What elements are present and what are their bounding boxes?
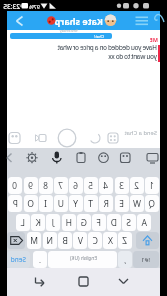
button[interactable]	[48, 251, 117, 268]
button[interactable]	[57, 128, 77, 148]
staticText: L	[20, 217, 25, 229]
button[interactable]	[7, 232, 25, 249]
button[interactable]	[4, 151, 14, 164]
button[interactable]	[50, 151, 63, 164]
staticText: P	[12, 198, 18, 210]
button[interactable]	[34, 131, 48, 145]
button[interactable]: 0	[8, 177, 22, 194]
button[interactable]	[152, 12, 166, 29]
button[interactable]	[34, 275, 48, 289]
button[interactable]: 4	[99, 177, 113, 194]
staticText: 2	[134, 180, 139, 192]
button[interactable]	[77, 275, 91, 289]
button[interactable]	[133, 12, 151, 29]
staticText: 0	[12, 180, 17, 192]
button[interactable]	[146, 151, 159, 164]
button[interactable]: X	[103, 232, 117, 249]
button[interactable]: 1	[145, 177, 159, 194]
button[interactable]	[74, 151, 87, 164]
staticText: N	[46, 235, 53, 247]
button[interactable]	[26, 151, 39, 164]
button[interactable]: L	[16, 214, 30, 231]
button[interactable]: 3	[115, 177, 129, 194]
button[interactable]: B	[58, 232, 72, 249]
button[interactable]: J	[46, 214, 60, 231]
button[interactable]: G	[77, 214, 91, 231]
staticText: F	[96, 217, 101, 229]
staticText: S	[126, 217, 131, 229]
button[interactable]: !#1	[133, 251, 159, 268]
staticText: 97%	[29, 3, 40, 10]
button[interactable]: F	[92, 214, 106, 231]
button[interactable]: Q	[145, 195, 159, 212]
staticText: J	[51, 217, 54, 229]
staticText: you want to do xx	[108, 52, 157, 61]
button[interactable]: D	[107, 214, 121, 231]
button[interactable]	[136, 232, 159, 249]
button[interactable]: M	[27, 232, 41, 249]
button[interactable]	[7, 11, 160, 30]
staticText: !#1	[141, 256, 150, 264]
staticText: M	[30, 235, 38, 247]
staticText: Q	[148, 198, 155, 210]
staticText: 3	[119, 180, 124, 192]
staticText: T	[88, 198, 93, 210]
button[interactable]: A	[137, 214, 151, 231]
button[interactable]: V	[73, 232, 87, 249]
staticText: ME	[149, 36, 158, 43]
staticText: Send	[10, 255, 26, 264]
button[interactable]: 5	[84, 177, 98, 194]
staticText: X	[107, 235, 113, 247]
button[interactable]: 6	[69, 177, 83, 194]
button[interactable]: .	[33, 251, 47, 268]
button[interactable]: T	[84, 195, 98, 212]
button[interactable]	[106, 131, 120, 145]
button[interactable]: O	[24, 195, 38, 212]
button[interactable]	[117, 275, 131, 289]
staticText: 5	[88, 180, 93, 192]
button[interactable]: Z	[118, 232, 132, 249]
button[interactable]: E	[115, 195, 129, 212]
button[interactable]: H	[62, 214, 76, 231]
button[interactable]: K	[31, 214, 45, 231]
staticText: Send a Chat	[124, 129, 157, 137]
button[interactable]: 8	[39, 177, 53, 194]
button[interactable]: N	[43, 232, 57, 249]
staticText: Yesterday	[59, 28, 78, 33]
staticText: 6	[73, 180, 78, 192]
button[interactable]: W	[130, 195, 144, 212]
button[interactable]: Send	[7, 251, 30, 268]
button[interactable]: C	[88, 232, 102, 249]
button[interactable]	[97, 151, 110, 164]
button[interactable]	[8, 131, 22, 145]
button[interactable]: P	[8, 195, 22, 212]
button[interactable]: I	[39, 195, 53, 212]
button[interactable]: 9	[24, 177, 38, 194]
staticText: O	[27, 198, 34, 210]
staticText: 9	[28, 180, 33, 192]
staticText: B	[62, 235, 68, 247]
button[interactable]: Y	[69, 195, 83, 212]
staticText: English (UK)	[70, 255, 97, 262]
staticText: G	[80, 217, 87, 229]
button[interactable]: ,	[118, 251, 132, 268]
staticText: E	[119, 198, 124, 210]
button[interactable]: U	[54, 195, 68, 212]
button[interactable]	[7, 127, 160, 148]
staticText: W	[133, 198, 141, 210]
button[interactable]: S	[122, 214, 136, 231]
button[interactable]: 7	[54, 177, 68, 194]
staticText: D	[110, 217, 117, 229]
button[interactable]	[88, 131, 102, 145]
staticText: A	[141, 217, 147, 229]
staticText: 7	[58, 180, 63, 192]
staticText: Chat!	[94, 34, 104, 39]
button[interactable]	[10, 33, 112, 39]
staticText: R	[103, 198, 109, 210]
staticText: 4	[103, 180, 108, 192]
button[interactable]: R	[99, 195, 113, 212]
staticText: Kate sharp	[54, 15, 103, 27]
button[interactable]: 2	[130, 177, 144, 194]
button[interactable]	[11, 12, 27, 29]
button[interactable]	[119, 151, 132, 164]
